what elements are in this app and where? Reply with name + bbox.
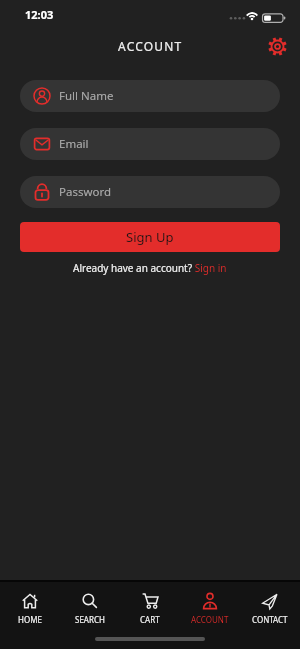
staticText: ACCOUNT [118, 38, 183, 54]
staticText: Full Name [59, 88, 114, 104]
staticText: Email [59, 136, 89, 152]
button[interactable]: CART [120, 591, 180, 625]
staticText: 12:03 [25, 7, 54, 22]
button[interactable]: Sign Up [20, 222, 280, 252]
staticText: ACCOUNT [191, 614, 229, 625]
button[interactable]: Full Name [20, 80, 280, 112]
button[interactable]: SEARCH [60, 591, 120, 625]
staticText: SEARCH [75, 614, 105, 625]
staticText: Sign Up [126, 228, 174, 246]
button[interactable]: ACCOUNT [180, 591, 240, 625]
button[interactable] [267, 36, 287, 56]
button[interactable]: Already have an account? Sign in [73, 261, 227, 275]
button[interactable]: HOME [0, 591, 60, 625]
staticText: CART [140, 614, 160, 625]
staticText: Password [59, 184, 112, 200]
staticText: HOME [18, 614, 42, 625]
button[interactable]: CONTACT [240, 591, 300, 625]
button[interactable]: Email [20, 128, 280, 160]
staticText: CONTACT [252, 614, 288, 625]
button[interactable]: Password [20, 176, 280, 208]
